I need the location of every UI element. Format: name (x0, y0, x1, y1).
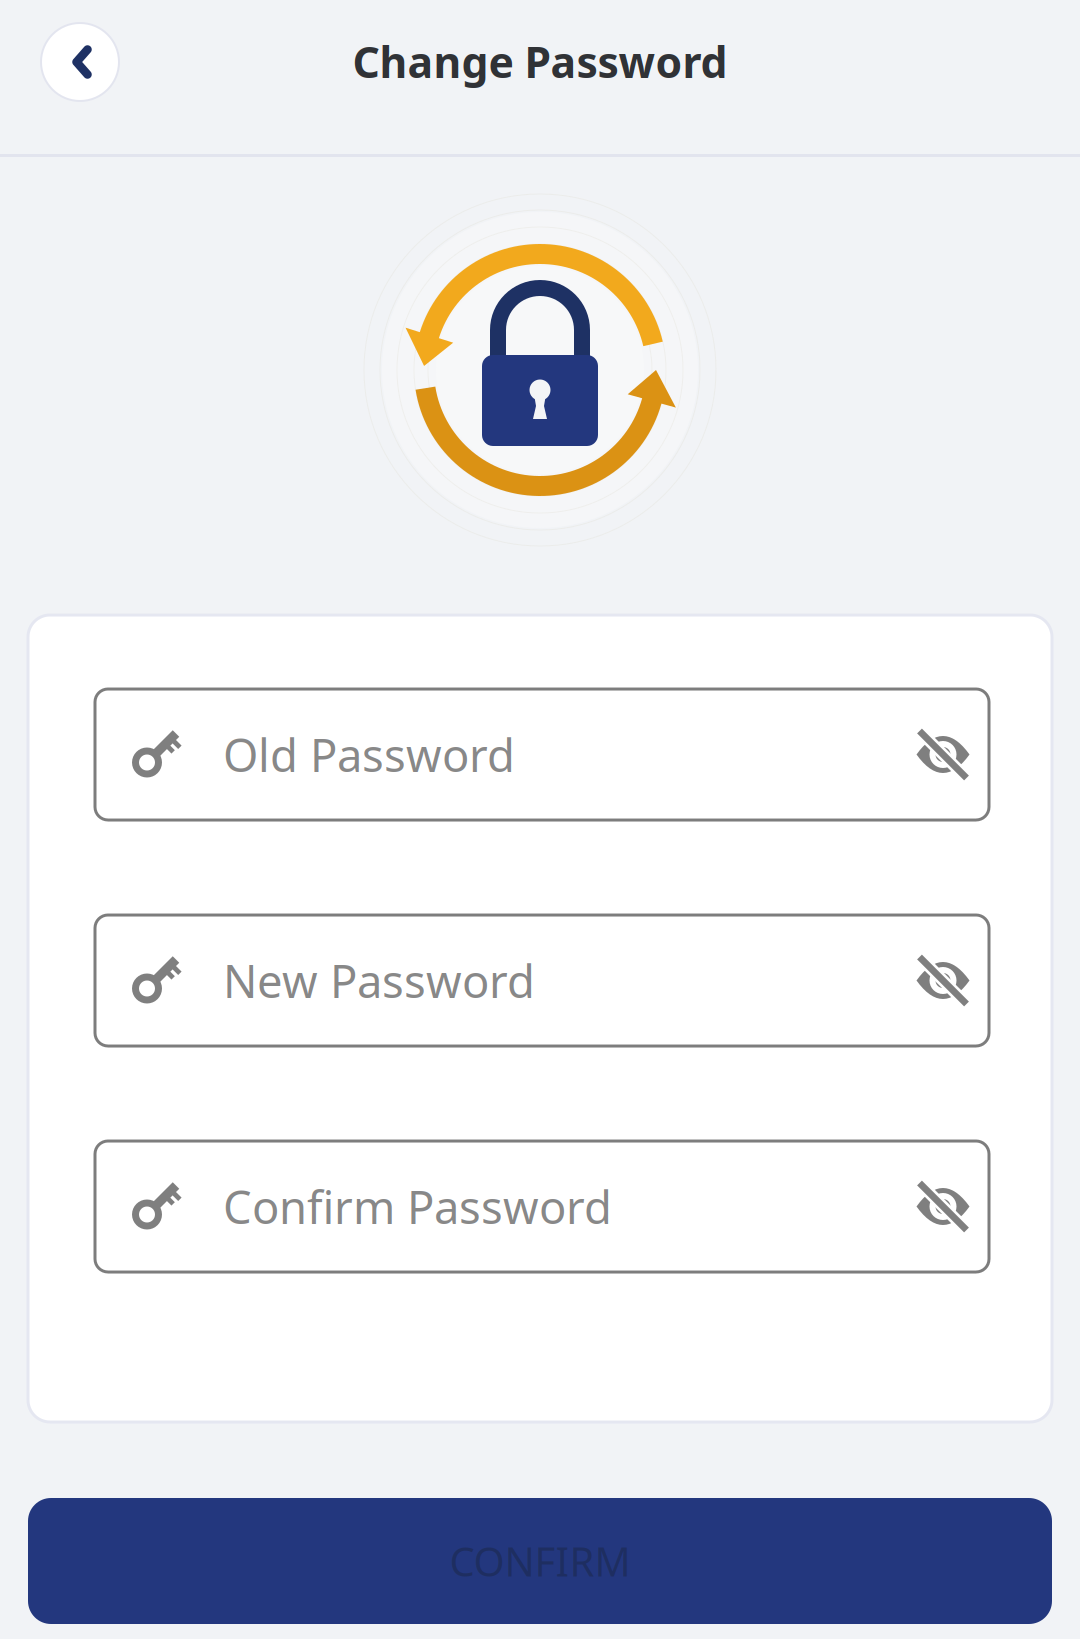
staticText: Old Password (223, 724, 515, 785)
staticText: CONFIRM (449, 1534, 630, 1587)
staticText: New Password (223, 950, 535, 1011)
button[interactable]: Show New Password (915, 956, 989, 1004)
button[interactable]: CONFIRM (28, 1498, 1052, 1624)
button[interactable]: Show Old Password (915, 730, 989, 778)
button[interactable]: Show Confirm Password (915, 1182, 989, 1230)
staticText: Confirm Password (223, 1176, 612, 1237)
staticText: Change Password (352, 33, 727, 90)
button[interactable]: Back (41, 23, 119, 101)
